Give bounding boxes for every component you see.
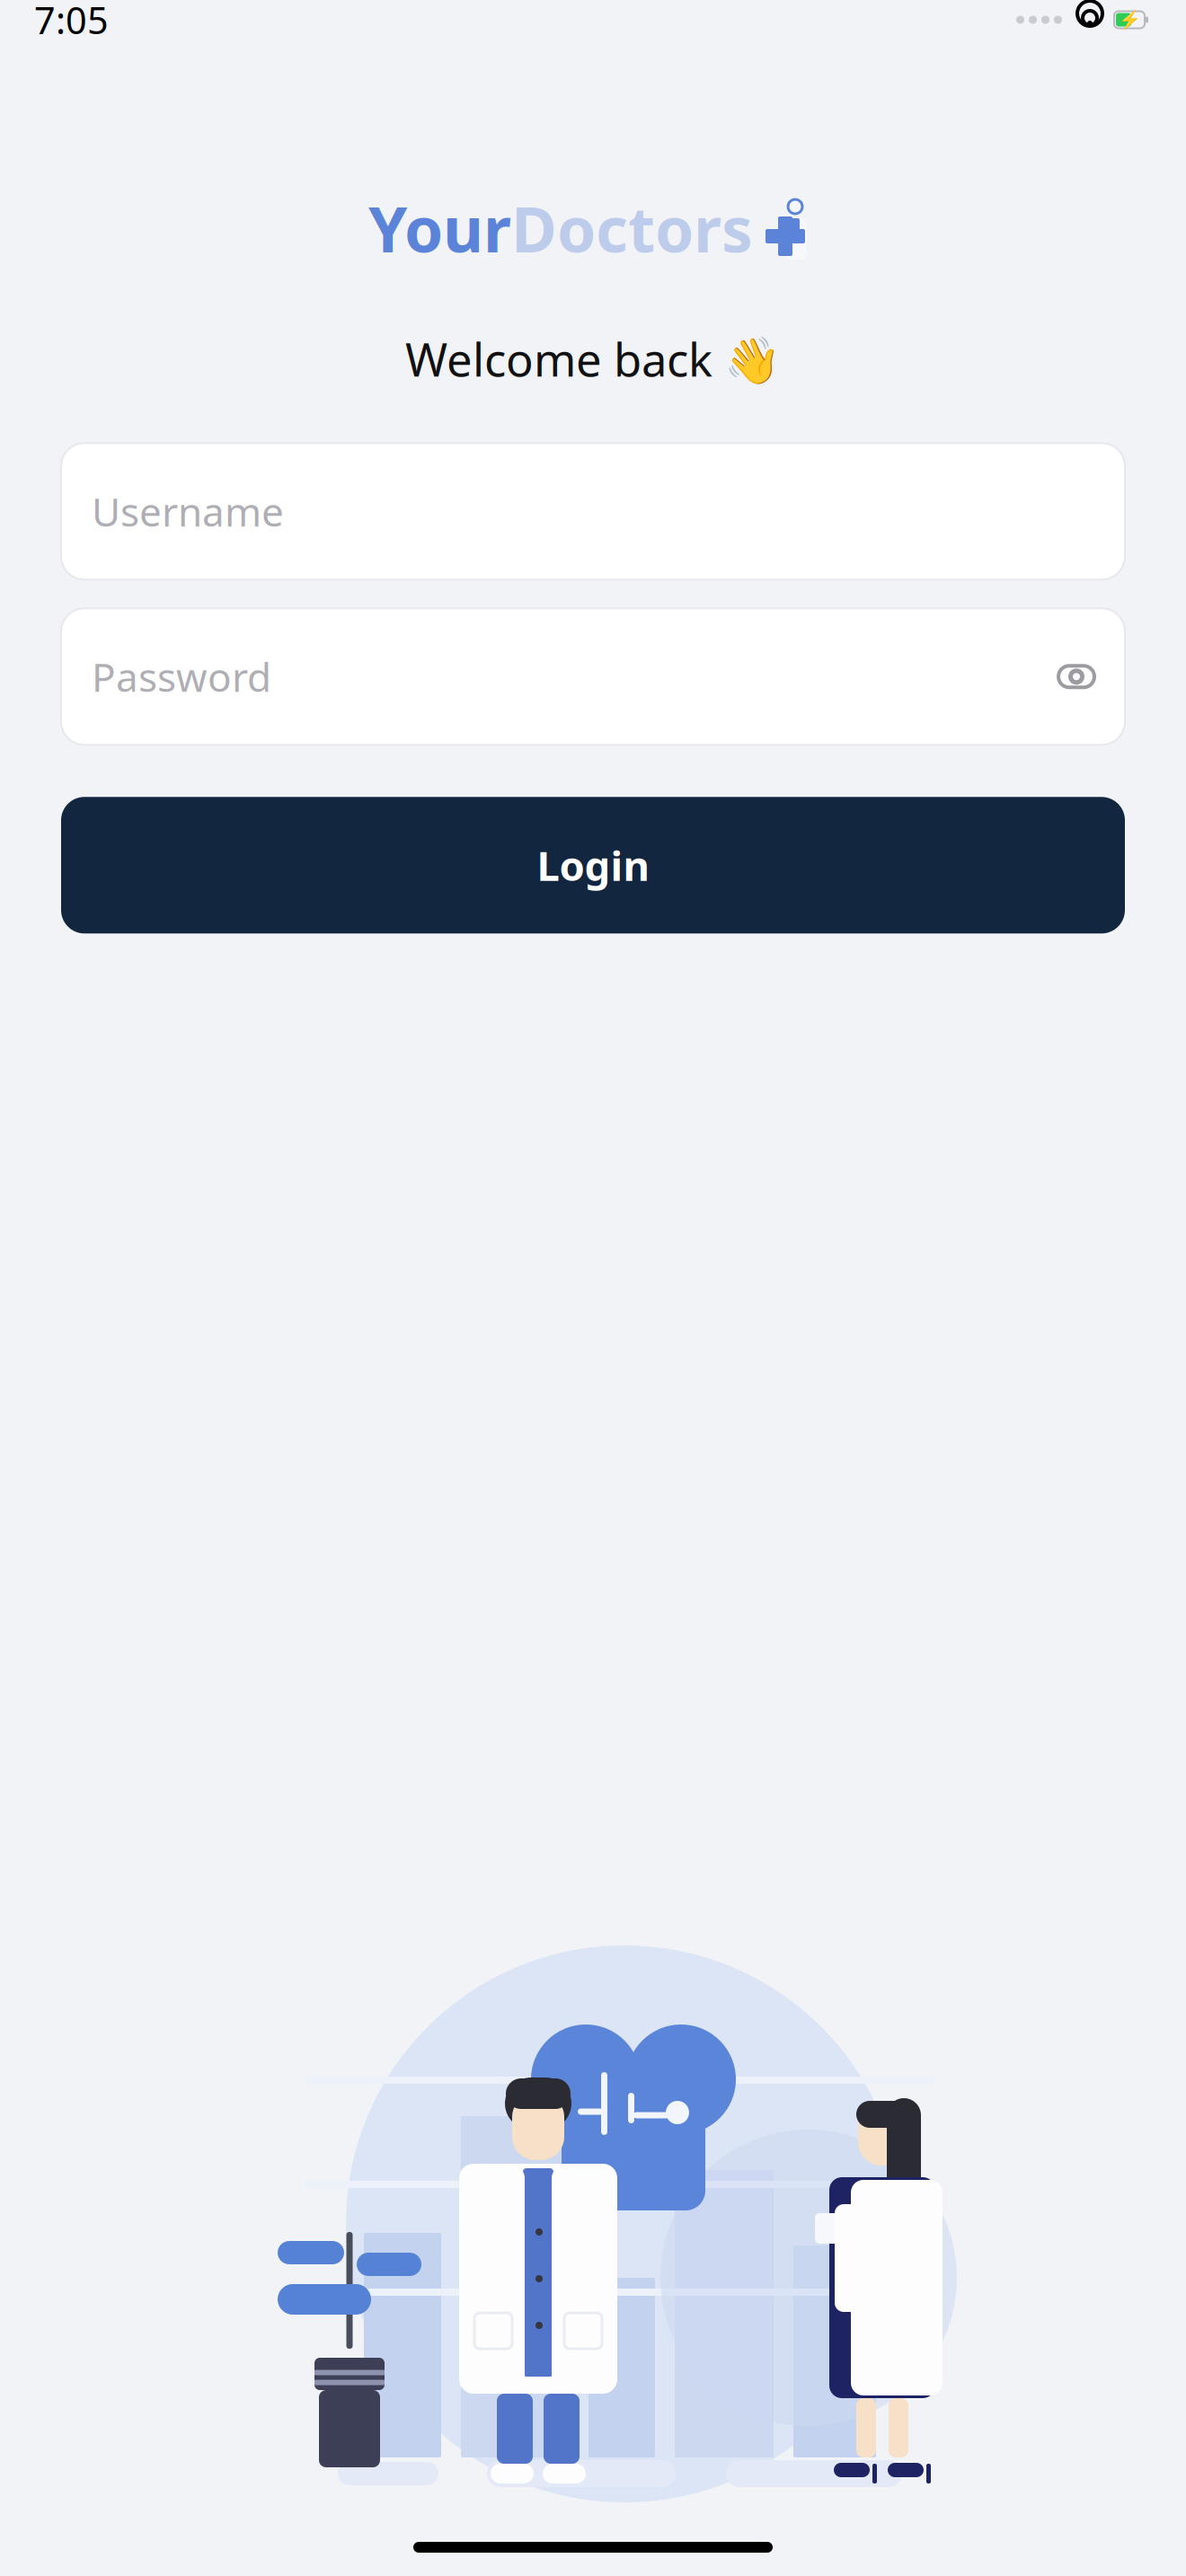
button[interactable]: Password <box>61 608 1125 745</box>
staticText: Username <box>92 485 284 538</box>
staticText: Password <box>92 650 271 703</box>
staticText: 7:05 <box>34 0 109 44</box>
staticText: Welcome back 👋 <box>405 329 781 389</box>
staticText: ⚡ <box>1118 10 1141 30</box>
button[interactable]: Login <box>61 797 1125 933</box>
button[interactable]: Username <box>61 443 1125 580</box>
staticText: Your <box>368 187 511 270</box>
staticText: Doctors <box>511 187 753 270</box>
staticText: Login <box>537 838 649 892</box>
